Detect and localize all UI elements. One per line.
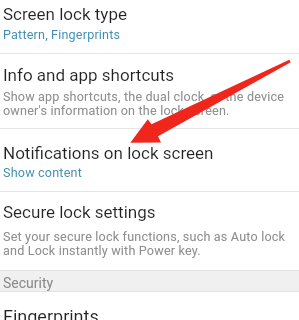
button[interactable]: Notifications on lock screen	[0, 129, 299, 191]
button[interactable]: Screen lock type	[0, 0, 299, 53]
button[interactable]: Secure lock settings	[0, 192, 299, 270]
button[interactable]: Fingerprints	[0, 292, 299, 320]
staticText: Security	[3, 275, 54, 291]
staticText: Fingerprints	[3, 306, 99, 320]
staticText: Show content	[3, 165, 82, 180]
staticText: Screen lock type	[3, 4, 127, 24]
staticText: Notifications on lock screen	[3, 143, 214, 163]
staticText: Set your secure lock functions, such as …	[3, 229, 286, 258]
staticText: Secure lock settings	[3, 202, 156, 222]
staticText: Info and app shortcuts	[3, 65, 175, 85]
staticText: Pattern, Fingerprints	[3, 27, 121, 42]
staticText: Show app shortcuts, the dual clock, or t…	[3, 89, 285, 118]
button[interactable]: Info and app shortcuts	[0, 54, 299, 128]
